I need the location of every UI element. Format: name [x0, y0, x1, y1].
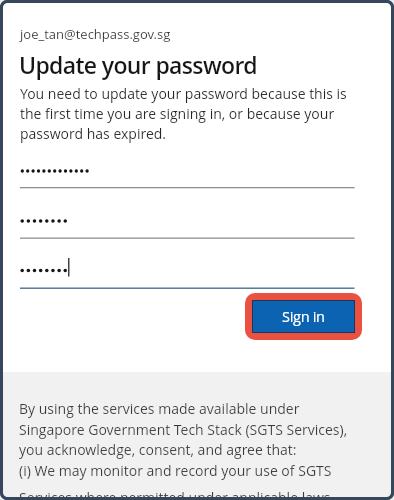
button[interactable]: [20, 208, 355, 238]
staticText: Services where permitted under applicabl…: [19, 488, 334, 500]
staticText: you acknowledge, consent, and agree that…: [19, 440, 297, 459]
staticText: Singapore Government Tech Stack (SGTS Se…: [19, 420, 348, 439]
staticText: Sign in: [282, 307, 325, 327]
button[interactable]: [20, 158, 355, 188]
button[interactable]: Sign in: [252, 300, 355, 333]
staticText: By using the services made available und…: [19, 399, 300, 418]
staticText: (i) We may monitor and record your use o…: [19, 461, 332, 480]
staticText: You need to update your password because…: [20, 84, 347, 103]
staticText: the first time you are signing in, or be…: [20, 104, 335, 123]
staticText: joe_tan@techpass.gov.sg: [20, 25, 171, 43]
staticText: Update your password: [19, 49, 257, 80]
button[interactable]: [20, 258, 355, 288]
staticText: password has expired.: [20, 124, 167, 143]
